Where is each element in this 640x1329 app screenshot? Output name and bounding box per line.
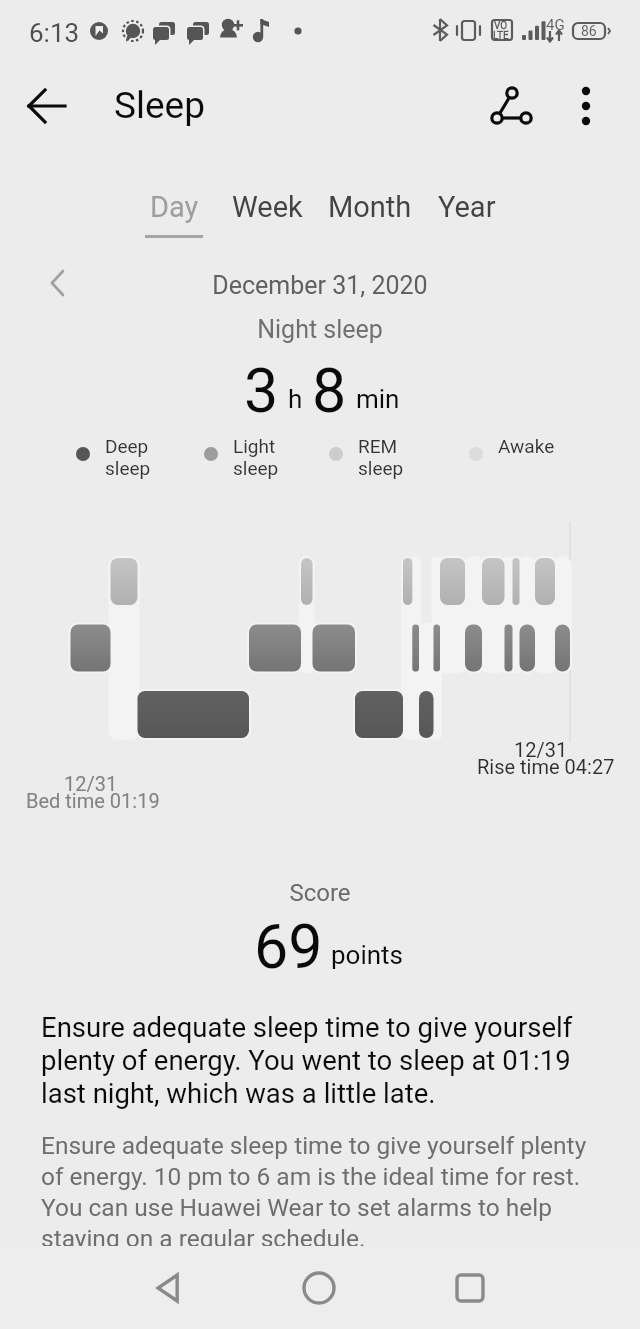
button[interactable]: Recents	[430, 1246, 510, 1329]
staticText: December 31, 2020	[0, 271, 640, 300]
staticText: Day	[150, 190, 199, 224]
staticText: Light	[233, 435, 276, 457]
button[interactable]: Home	[279, 1246, 359, 1329]
button[interactable]: Light	[199, 432, 319, 480]
button[interactable]: REM	[324, 432, 444, 480]
staticText: Ensure adequate sleep time to give yours…	[41, 1011, 599, 1109]
staticText: Month	[328, 190, 412, 224]
button[interactable]: More options	[556, 76, 616, 136]
staticText: Year	[438, 190, 496, 224]
staticText: Week	[232, 190, 303, 224]
staticText: Ensure adequate sleep time to give yours…	[41, 1131, 607, 1253]
button[interactable]: Back	[23, 76, 83, 136]
staticText: 8	[312, 355, 347, 426]
staticText: LTE	[493, 30, 509, 42]
staticText: sleep	[105, 457, 151, 479]
staticText: h	[288, 384, 303, 414]
staticText: min	[356, 384, 400, 414]
staticText: sleep	[358, 457, 404, 479]
staticText: 3	[244, 355, 279, 426]
staticText: Rise time 04:27	[477, 755, 615, 778]
staticText: 69	[254, 911, 323, 982]
staticText: Sleep	[114, 84, 205, 127]
staticText: 4G	[546, 16, 565, 34]
staticText: VO	[494, 20, 508, 32]
staticText: 6:13	[29, 18, 80, 48]
button[interactable]: Awake	[464, 432, 584, 480]
button[interactable]: Month	[314, 190, 426, 244]
staticText: sleep	[233, 457, 279, 479]
button[interactable]: Back	[129, 1246, 209, 1329]
staticText: Night sleep	[0, 315, 640, 344]
staticText: 86	[581, 23, 597, 39]
button[interactable]: Share	[482, 76, 542, 136]
staticText: Score	[0, 879, 640, 907]
button[interactable]: Deep	[71, 432, 191, 480]
staticText: Awake	[498, 435, 555, 457]
staticText: points	[331, 940, 404, 970]
button[interactable]: Year	[424, 190, 510, 244]
staticText: 12/31	[514, 738, 568, 761]
staticText: Bed time 01:19	[26, 789, 160, 812]
button[interactable]: Day	[136, 190, 212, 244]
staticText: REM	[358, 435, 398, 457]
staticText: Deep	[105, 435, 149, 457]
button[interactable]: Previous day	[32, 256, 84, 308]
button[interactable]: Week	[219, 190, 315, 244]
staticText: 12/31	[64, 772, 118, 795]
